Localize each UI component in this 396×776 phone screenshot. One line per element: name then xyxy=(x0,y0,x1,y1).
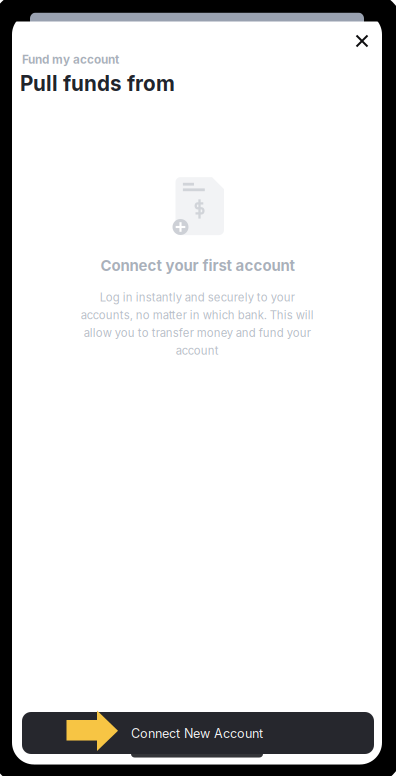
staticText: Connect New Account xyxy=(131,726,263,741)
staticText: Fund my account xyxy=(22,52,119,67)
staticText: Connect your first account xyxy=(100,256,294,275)
staticText: Pull funds from xyxy=(20,71,175,96)
button[interactable]: Connect New Account xyxy=(22,712,374,754)
staticText: Log in instantly and securely to your ac… xyxy=(80,291,313,357)
button[interactable]: Close xyxy=(341,20,383,62)
